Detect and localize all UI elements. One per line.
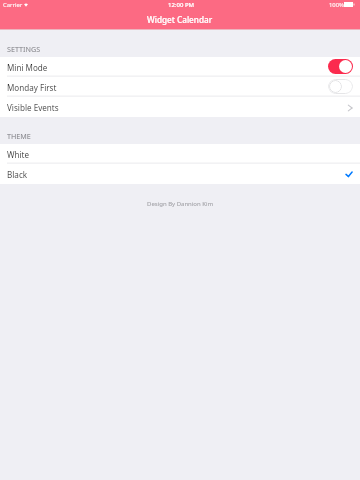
staticText: Black — [7, 169, 28, 180]
staticText: 100% — [329, 1, 345, 9]
staticText: Monday First — [7, 82, 57, 93]
other: Selected — [345, 170, 353, 180]
button[interactable]: Visible Events — [0, 97, 360, 117]
staticText: Mini Mode — [7, 62, 48, 73]
staticText: White — [7, 149, 30, 160]
staticText: THEME — [7, 131, 31, 141]
staticText: Widget Calendar — [147, 14, 213, 25]
button[interactable]: White — [0, 144, 360, 164]
other: Open — [347, 103, 353, 113]
staticText: Design By Dannion Kim — [147, 200, 214, 208]
button[interactable]: Mini Mode — [0, 57, 360, 77]
staticText: 12:00 PM — [168, 1, 195, 9]
button[interactable]: Toggle on — [328, 59, 353, 74]
button[interactable]: Monday First — [0, 77, 360, 97]
staticText: Carrier — [3, 1, 23, 9]
button[interactable]: Toggle off — [328, 79, 353, 94]
staticText: SETTINGS — [7, 44, 41, 54]
button[interactable]: Black — [0, 164, 360, 184]
staticText: Visible Events — [7, 102, 59, 113]
